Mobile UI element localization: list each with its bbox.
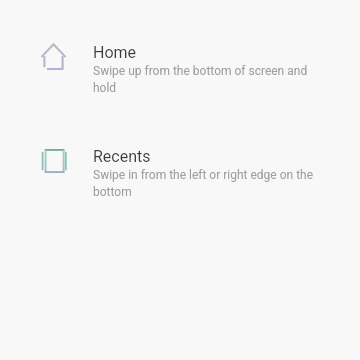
other: Home gesture (41, 43, 66, 70)
staticText: Swipe in from the left or right edge on … (93, 168, 323, 199)
other: Recents gesture (42, 149, 66, 173)
button[interactable]: Recents gesture (0, 147, 360, 213)
button[interactable]: Home gesture (0, 43, 360, 109)
staticText: Recents (93, 147, 151, 166)
staticText: Swipe up from the bottom of screen and h… (93, 64, 323, 95)
staticText: Home (93, 43, 137, 62)
